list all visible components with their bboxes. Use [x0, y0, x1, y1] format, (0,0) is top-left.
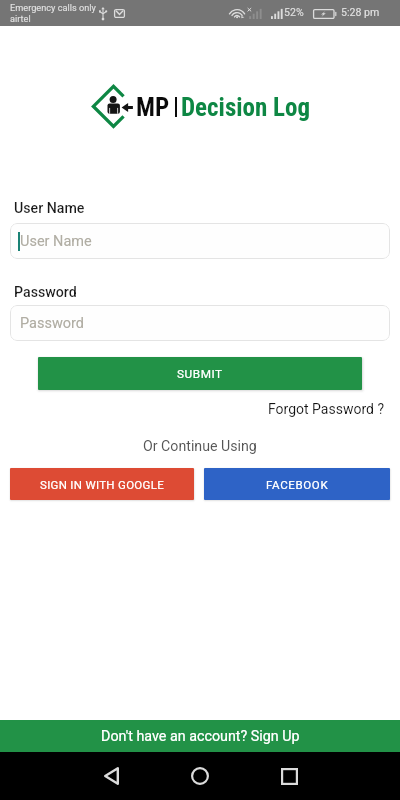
button[interactable]: Back — [87, 752, 135, 800]
button[interactable]: SIGN IN WITH GOOGLE — [10, 468, 194, 500]
staticText: 5:28 pm — [341, 6, 380, 18]
staticText: Password — [20, 315, 85, 332]
staticText: SIGN IN WITH GOOGLE — [40, 478, 165, 491]
staticText: User Name — [14, 200, 85, 217]
button[interactable]: SUBMIT — [38, 357, 362, 390]
staticText: SUBMIT — [177, 367, 223, 381]
button[interactable]: Don't have an account? Sign Up — [0, 720, 400, 752]
staticText: User Name — [20, 233, 92, 250]
button[interactable]: Recent apps — [265, 752, 313, 800]
button[interactable]: Password — [10, 305, 390, 341]
button[interactable]: Forgot Password ? — [268, 398, 400, 420]
button[interactable]: FACEBOOK — [204, 468, 390, 500]
staticText: airtel — [10, 13, 31, 24]
staticText: Don't have an account? Sign Up — [101, 728, 300, 745]
staticText: Decision Log — [181, 93, 311, 122]
staticText: Emergency calls only — [10, 2, 96, 13]
staticText: Password — [14, 284, 77, 301]
staticText: Forgot Password ? — [268, 401, 385, 417]
staticText: MP — [136, 93, 170, 122]
staticText: Or Continue Using — [143, 438, 257, 455]
button[interactable]: User Name — [10, 223, 390, 259]
staticText: FACEBOOK — [266, 478, 329, 491]
button[interactable]: Home — [176, 752, 224, 800]
staticText: 52% — [284, 6, 304, 18]
